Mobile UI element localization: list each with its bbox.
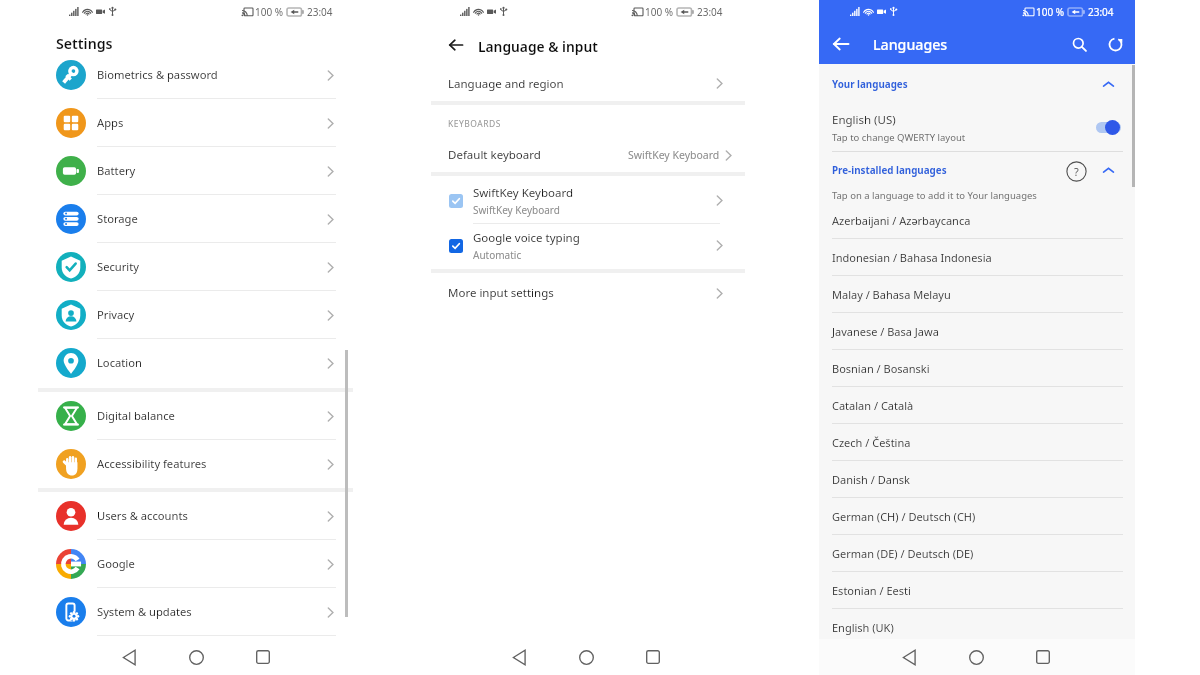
staticText: Indonesian / Bahasa Indonesia — [832, 250, 992, 265]
button[interactable]: Digital balance — [0, 392, 400, 440]
staticText: Default keyboard — [448, 147, 541, 163]
button[interactable]: Back — [895, 643, 923, 671]
staticText: Automatic — [473, 248, 522, 262]
staticText: Language and region — [448, 76, 564, 92]
button[interactable]: Back — [444, 31, 470, 57]
button[interactable]: Location — [0, 339, 400, 387]
button[interactable]: Accessibility features — [0, 440, 400, 488]
button[interactable]: Home — [572, 643, 600, 671]
staticText: SwiftKey Keyboard — [473, 185, 573, 201]
button[interactable]: Security — [0, 243, 400, 291]
button[interactable]: Privacy — [0, 291, 400, 339]
staticText: More input settings — [448, 285, 554, 301]
button[interactable]: Bosnian / Bosanski — [819, 350, 1135, 387]
staticText: Tap to change QWERTY layout — [832, 131, 966, 144]
staticText: 23:04 — [307, 5, 333, 19]
button[interactable]: Javanese / Basa Jawa — [819, 313, 1135, 350]
staticText: Location — [97, 355, 142, 370]
staticText: Apps — [97, 115, 124, 130]
button[interactable]: Recents — [639, 643, 667, 671]
staticText: KEYBOARDS — [448, 118, 501, 130]
button[interactable]: German (DE) / Deutsch (DE) — [819, 535, 1135, 572]
button[interactable]: Refresh — [1101, 30, 1129, 58]
button[interactable]: Back — [115, 643, 143, 671]
button[interactable]: Search — [1065, 30, 1093, 58]
staticText: Users & accounts — [97, 508, 188, 523]
button[interactable]: Recents — [249, 643, 277, 671]
staticText: Google voice typing — [473, 230, 580, 246]
staticText: Bosnian / Bosanski — [832, 361, 930, 376]
staticText: Danish / Dansk — [832, 472, 910, 487]
button[interactable]: Back — [827, 30, 855, 58]
button[interactable]: Apps — [0, 99, 400, 147]
button[interactable]: SwiftKey Keyboard — [400, 178, 800, 223]
staticText: Settings — [56, 34, 113, 53]
button[interactable]: Czech / Čeština — [819, 424, 1135, 461]
button[interactable]: Back — [505, 643, 533, 671]
button[interactable]: Storage — [0, 195, 400, 243]
staticText: Pre-installed languages — [832, 164, 947, 177]
button[interactable]: English (UK) — [819, 609, 1135, 646]
staticText: SwiftKey Keyboard — [473, 203, 560, 217]
button[interactable]: Indonesian / Bahasa Indonesia — [819, 239, 1135, 276]
staticText: ? — [1074, 164, 1079, 179]
staticText: Storage — [97, 211, 138, 226]
button[interactable]: More input settings — [400, 273, 800, 313]
staticText: Catalan / Català — [832, 398, 914, 413]
button[interactable]: Google — [0, 540, 400, 588]
staticText: English (US) — [832, 112, 896, 128]
button[interactable]: Pre-installed languages — [819, 152, 1135, 189]
button[interactable]: Malay / Bahasa Melayu — [819, 276, 1135, 313]
staticText: SwiftKey Keyboard — [628, 148, 720, 162]
staticText: Accessibility features — [97, 456, 207, 471]
staticText: System & updates — [97, 604, 192, 619]
staticText: Battery — [97, 163, 136, 178]
staticText: Privacy — [97, 307, 135, 322]
staticText: Security — [97, 259, 139, 274]
button[interactable]: System & updates — [0, 588, 400, 636]
button[interactable]: Estonian / Eesti — [819, 572, 1135, 609]
button[interactable]: Default keyboard — [400, 138, 800, 172]
button[interactable]: Help — [1065, 160, 1087, 182]
staticText: Biometrics & password — [97, 67, 218, 82]
staticText: Digital balance — [97, 408, 175, 423]
button[interactable]: Home — [962, 643, 990, 671]
staticText: 100 % — [645, 5, 674, 19]
button[interactable]: Google voice typing — [400, 223, 800, 268]
staticText: German (DE) / Deutsch (DE) — [832, 546, 974, 561]
staticText: Azerbaijani / Azərbaycanca — [832, 213, 971, 228]
button[interactable]: Catalan / Català — [819, 387, 1135, 424]
staticText: Czech / Čeština — [832, 435, 911, 450]
staticText: Language & input — [478, 37, 598, 56]
staticText: Google — [97, 556, 135, 571]
button[interactable]: Your languages — [819, 64, 1135, 104]
staticText: 100 % — [255, 5, 284, 19]
button[interactable]: Recents — [1029, 643, 1057, 671]
button[interactable]: Danish / Dansk — [819, 461, 1135, 498]
staticText: German (CH) / Deutsch (CH) — [832, 509, 976, 524]
button[interactable]: English (US) — [819, 104, 1135, 151]
staticText: 100 % — [1036, 5, 1065, 19]
staticText: Malay / Bahasa Melayu — [832, 287, 951, 302]
staticText: Tap on a language to add it to Your lang… — [832, 189, 1037, 202]
staticText: English (UK) — [832, 620, 894, 635]
staticText: 23:04 — [697, 5, 723, 19]
button[interactable]: Language and region — [400, 64, 800, 103]
button[interactable]: German (CH) / Deutsch (CH) — [819, 498, 1135, 535]
button[interactable]: Home — [182, 643, 210, 671]
staticText: Javanese / Basa Jawa — [832, 324, 939, 339]
staticText: Estonian / Eesti — [832, 583, 911, 598]
button[interactable]: Biometrics & password — [0, 51, 400, 99]
button[interactable]: Users & accounts — [0, 492, 400, 540]
button[interactable]: Azerbaijani / Azərbaycanca — [819, 202, 1135, 239]
staticText: 23:04 — [1088, 5, 1114, 19]
button[interactable]: Battery — [0, 147, 400, 195]
staticText: Your languages — [832, 78, 908, 91]
staticText: Languages — [873, 35, 948, 54]
